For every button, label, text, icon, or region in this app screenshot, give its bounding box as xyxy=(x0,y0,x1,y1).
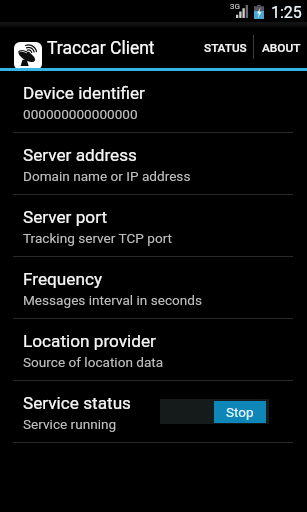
staticText: Server address xyxy=(23,145,137,165)
button[interactable]: Stop service xyxy=(160,399,269,424)
staticText: Server port xyxy=(23,207,108,227)
button[interactable]: Service status xyxy=(0,381,307,442)
staticText: 000000000000000 xyxy=(23,106,138,122)
button[interactable]: STATUS xyxy=(197,22,253,68)
staticText: Service running xyxy=(23,416,117,432)
staticText: Source of location data xyxy=(23,354,164,370)
staticText: Device identifier xyxy=(23,83,145,103)
button[interactable]: Location provider xyxy=(0,319,307,380)
staticText: Location provider xyxy=(23,331,156,351)
staticText: Messages interval in seconds xyxy=(23,292,202,308)
button[interactable]: Traccar Client xyxy=(0,22,168,68)
button[interactable]: Device identifier xyxy=(0,71,307,132)
staticText: Stop xyxy=(226,404,254,420)
button[interactable]: Server port xyxy=(0,195,307,256)
button[interactable]: ABOUT xyxy=(255,22,307,68)
staticText: 1:25 xyxy=(271,3,302,22)
button[interactable]: Frequency xyxy=(0,257,307,318)
staticText: Domain name or IP address xyxy=(23,168,191,184)
staticText: STATUS xyxy=(204,41,247,55)
button[interactable]: Server address xyxy=(0,133,307,194)
staticText: 3G xyxy=(230,2,240,11)
staticText: Traccar Client xyxy=(47,38,155,59)
staticText: Service status xyxy=(23,393,131,413)
staticText: ABOUT xyxy=(262,41,301,55)
staticText: Tracking server TCP port xyxy=(23,230,173,246)
staticText: Frequency xyxy=(23,269,103,289)
